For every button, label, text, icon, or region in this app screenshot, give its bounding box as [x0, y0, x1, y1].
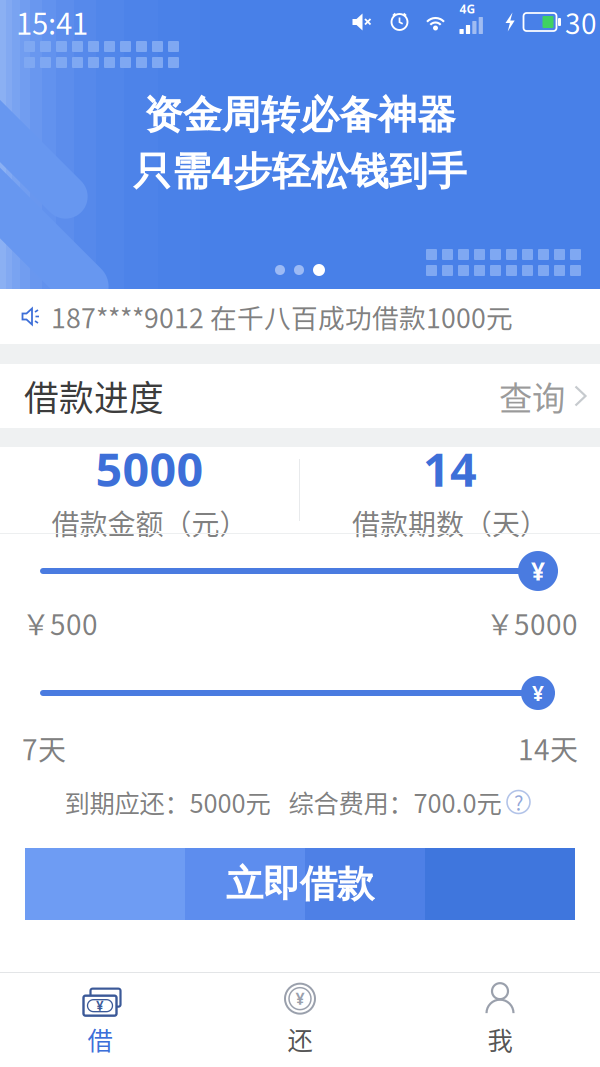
button[interactable]: 借款进度: [0, 364, 600, 428]
staticText: ?: [514, 787, 523, 816]
staticText: ¥: [295, 988, 304, 1010]
staticText: 还: [287, 1021, 312, 1057]
staticText: 借款金额（元）: [51, 502, 247, 543]
staticText: 7天: [22, 728, 66, 768]
staticText: 借款进度: [24, 371, 164, 421]
staticText: 立即借款: [226, 860, 374, 907]
staticText: 综合费用：700.0元: [270, 784, 501, 820]
staticText: 查询: [499, 372, 565, 420]
button[interactable]: ¥: [200, 973, 400, 1067]
staticText: 5000: [95, 437, 203, 500]
staticText: ¥: [532, 679, 544, 707]
staticText: 借: [87, 1021, 112, 1057]
staticText: ￥5000: [486, 603, 578, 643]
staticText: 到期应还：5000元: [64, 784, 270, 820]
staticText: 4G: [459, 1, 475, 17]
staticText: ¥: [96, 997, 104, 1015]
staticText: 15:41: [16, 1, 88, 43]
staticText: 30: [565, 2, 597, 42]
button[interactable]: 立即借款: [25, 848, 575, 920]
staticText: 资金周转必备神器: [144, 91, 456, 139]
staticText: 只需4步轻松钱到手: [133, 144, 467, 196]
staticText: 我: [487, 1021, 512, 1057]
staticText: 187****9012 在千八百成功借款1000元: [51, 297, 513, 336]
button[interactable]: 我: [400, 973, 600, 1067]
staticText: ￥500: [22, 603, 98, 643]
staticText: 14天: [518, 728, 578, 768]
staticText: 借款期数（天）: [352, 502, 548, 543]
button[interactable]: 费用说明: [501, 786, 535, 818]
button[interactable]: ¥: [0, 973, 200, 1067]
button[interactable]: 187****9012 在千八百成功借款1000元: [0, 289, 600, 344]
staticText: 14: [423, 437, 477, 500]
staticText: ¥: [531, 554, 545, 588]
